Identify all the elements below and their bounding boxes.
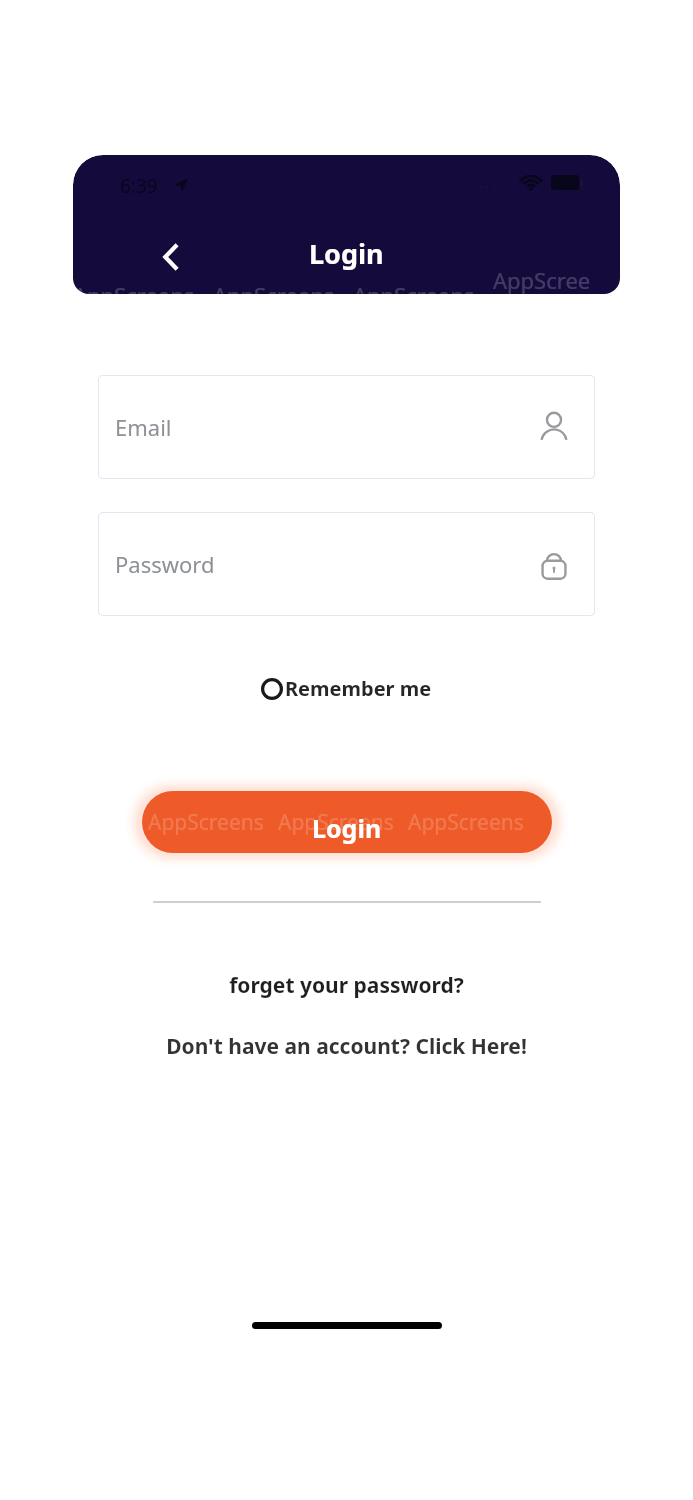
staticText: AppScreens	[278, 808, 394, 837]
staticText: Password	[115, 549, 215, 579]
staticText: 6:39	[120, 173, 158, 199]
button[interactable]: Remember me	[257, 671, 436, 706]
staticText: AppScreens	[148, 808, 264, 837]
button[interactable]: Password	[98, 512, 595, 616]
staticText: AppScreens	[73, 280, 195, 294]
staticText: forget your password?	[229, 971, 464, 1000]
staticText: AppScreens	[493, 265, 602, 294]
staticText: AppScreens	[213, 280, 335, 294]
staticText: Login	[312, 811, 382, 845]
staticText: AppScreens	[408, 808, 524, 837]
staticText: Email	[115, 412, 172, 442]
staticText: AppScreens	[353, 280, 475, 294]
button[interactable]: AppScreens	[142, 791, 552, 853]
staticText: Don't have an account? Click Here!	[166, 1032, 527, 1061]
button[interactable]: Back	[149, 235, 193, 279]
staticText: Remember me	[285, 675, 432, 702]
button[interactable]: forget your password?	[221, 965, 472, 1006]
button[interactable]: Email	[98, 375, 595, 479]
button[interactable]: Don't have an account? Click Here!	[158, 1026, 535, 1067]
staticText: Login	[309, 235, 384, 272]
